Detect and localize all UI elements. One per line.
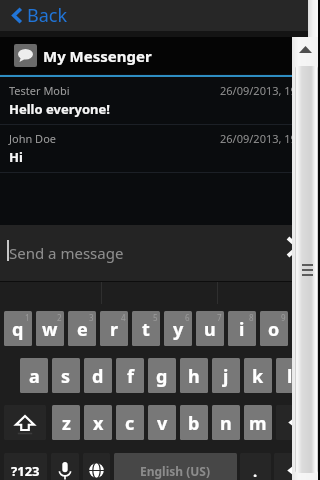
staticText: i: [239, 317, 245, 342]
button[interactable]: Shift: [4, 405, 46, 440]
button[interactable]: e: [68, 311, 96, 346]
staticText: 1: [25, 312, 30, 323]
staticText: 7: [217, 312, 222, 323]
button[interactable]: Tester Mobi: [0, 77, 320, 124]
button[interactable]: l: [276, 358, 304, 393]
button[interactable]: English (US): [114, 453, 237, 480]
staticText: a: [29, 364, 40, 389]
button[interactable]: p: [292, 311, 320, 346]
button[interactable]: g: [148, 358, 176, 393]
staticText: w: [42, 317, 58, 342]
button[interactable]: k: [244, 358, 272, 393]
staticText: ?123: [11, 462, 40, 480]
button[interactable]: John Doe: [0, 125, 320, 172]
button[interactable]: a: [20, 358, 48, 393]
staticText: l: [287, 364, 293, 389]
staticText: r: [110, 317, 119, 342]
button[interactable]: b: [180, 405, 208, 440]
staticText: Send a message: [9, 243, 124, 263]
button[interactable]: i: [228, 311, 256, 346]
button[interactable]: x: [84, 405, 112, 440]
button[interactable]: Enter: [274, 453, 318, 480]
staticText: n: [220, 411, 232, 436]
staticText: g: [156, 364, 168, 389]
button[interactable]: .: [240, 453, 271, 480]
staticText: .: [253, 461, 258, 480]
button[interactable]: r: [100, 311, 128, 346]
button[interactable]: Back: [7, 0, 78, 31]
staticText: John Doe: [9, 131, 57, 146]
button[interactable]: t: [132, 311, 160, 346]
staticText: 2: [57, 312, 62, 323]
staticText: My Messenger: [43, 46, 152, 66]
button[interactable]: Send: [284, 235, 314, 269]
button[interactable]: Backspace: [276, 405, 318, 440]
button[interactable]: w: [36, 311, 64, 346]
staticText: Back: [27, 3, 68, 28]
button[interactable]: ?123: [4, 453, 47, 480]
staticText: x: [93, 411, 104, 436]
staticText: d: [92, 364, 104, 389]
staticText: k: [252, 364, 264, 389]
staticText: t: [142, 317, 150, 342]
staticText: Tester Mobi: [9, 83, 70, 98]
staticText: c: [125, 411, 135, 436]
staticText: 6: [185, 312, 190, 323]
button[interactable]: u: [196, 311, 224, 346]
staticText: b: [188, 411, 200, 436]
button[interactable]: c: [116, 405, 144, 440]
staticText: m: [249, 411, 267, 436]
staticText: u: [204, 317, 216, 342]
button[interactable]: Voice input: [51, 453, 79, 480]
staticText: 26/09/2013, 19:: [220, 83, 300, 98]
staticText: Hello everyone!: [9, 100, 110, 118]
staticText: 5: [153, 312, 158, 323]
button[interactable]: n: [212, 405, 240, 440]
staticText: p: [300, 317, 312, 342]
staticText: j: [223, 364, 229, 389]
button[interactable]: q: [4, 311, 32, 346]
staticText: q: [12, 317, 24, 342]
button[interactable]: h: [180, 358, 208, 393]
staticText: z: [62, 411, 71, 436]
staticText: Hi: [9, 148, 23, 166]
button[interactable]: Language: [83, 453, 110, 480]
button[interactable]: m: [244, 405, 272, 440]
staticText: y: [173, 317, 184, 342]
button[interactable]: y: [164, 311, 192, 346]
staticText: 3: [89, 312, 94, 323]
staticText: s: [61, 364, 71, 389]
staticText: o: [268, 317, 280, 342]
staticText: 8: [249, 312, 254, 323]
button[interactable]: s: [52, 358, 80, 393]
staticText: English (US): [140, 463, 211, 479]
staticText: 26/09/2013, 19:: [220, 131, 300, 146]
button[interactable]: v: [148, 405, 176, 440]
button[interactable]: f: [116, 358, 144, 393]
staticText: f: [127, 364, 134, 389]
button[interactable]: d: [84, 358, 112, 393]
staticText: 0: [313, 312, 318, 323]
staticText: e: [77, 317, 88, 342]
staticText: 9: [281, 312, 286, 323]
staticText: 4: [121, 312, 126, 323]
staticText: v: [157, 411, 168, 436]
button[interactable]: o: [260, 311, 288, 346]
staticText: h: [188, 364, 200, 389]
button[interactable]: z: [52, 405, 80, 440]
button[interactable]: j: [212, 358, 240, 393]
